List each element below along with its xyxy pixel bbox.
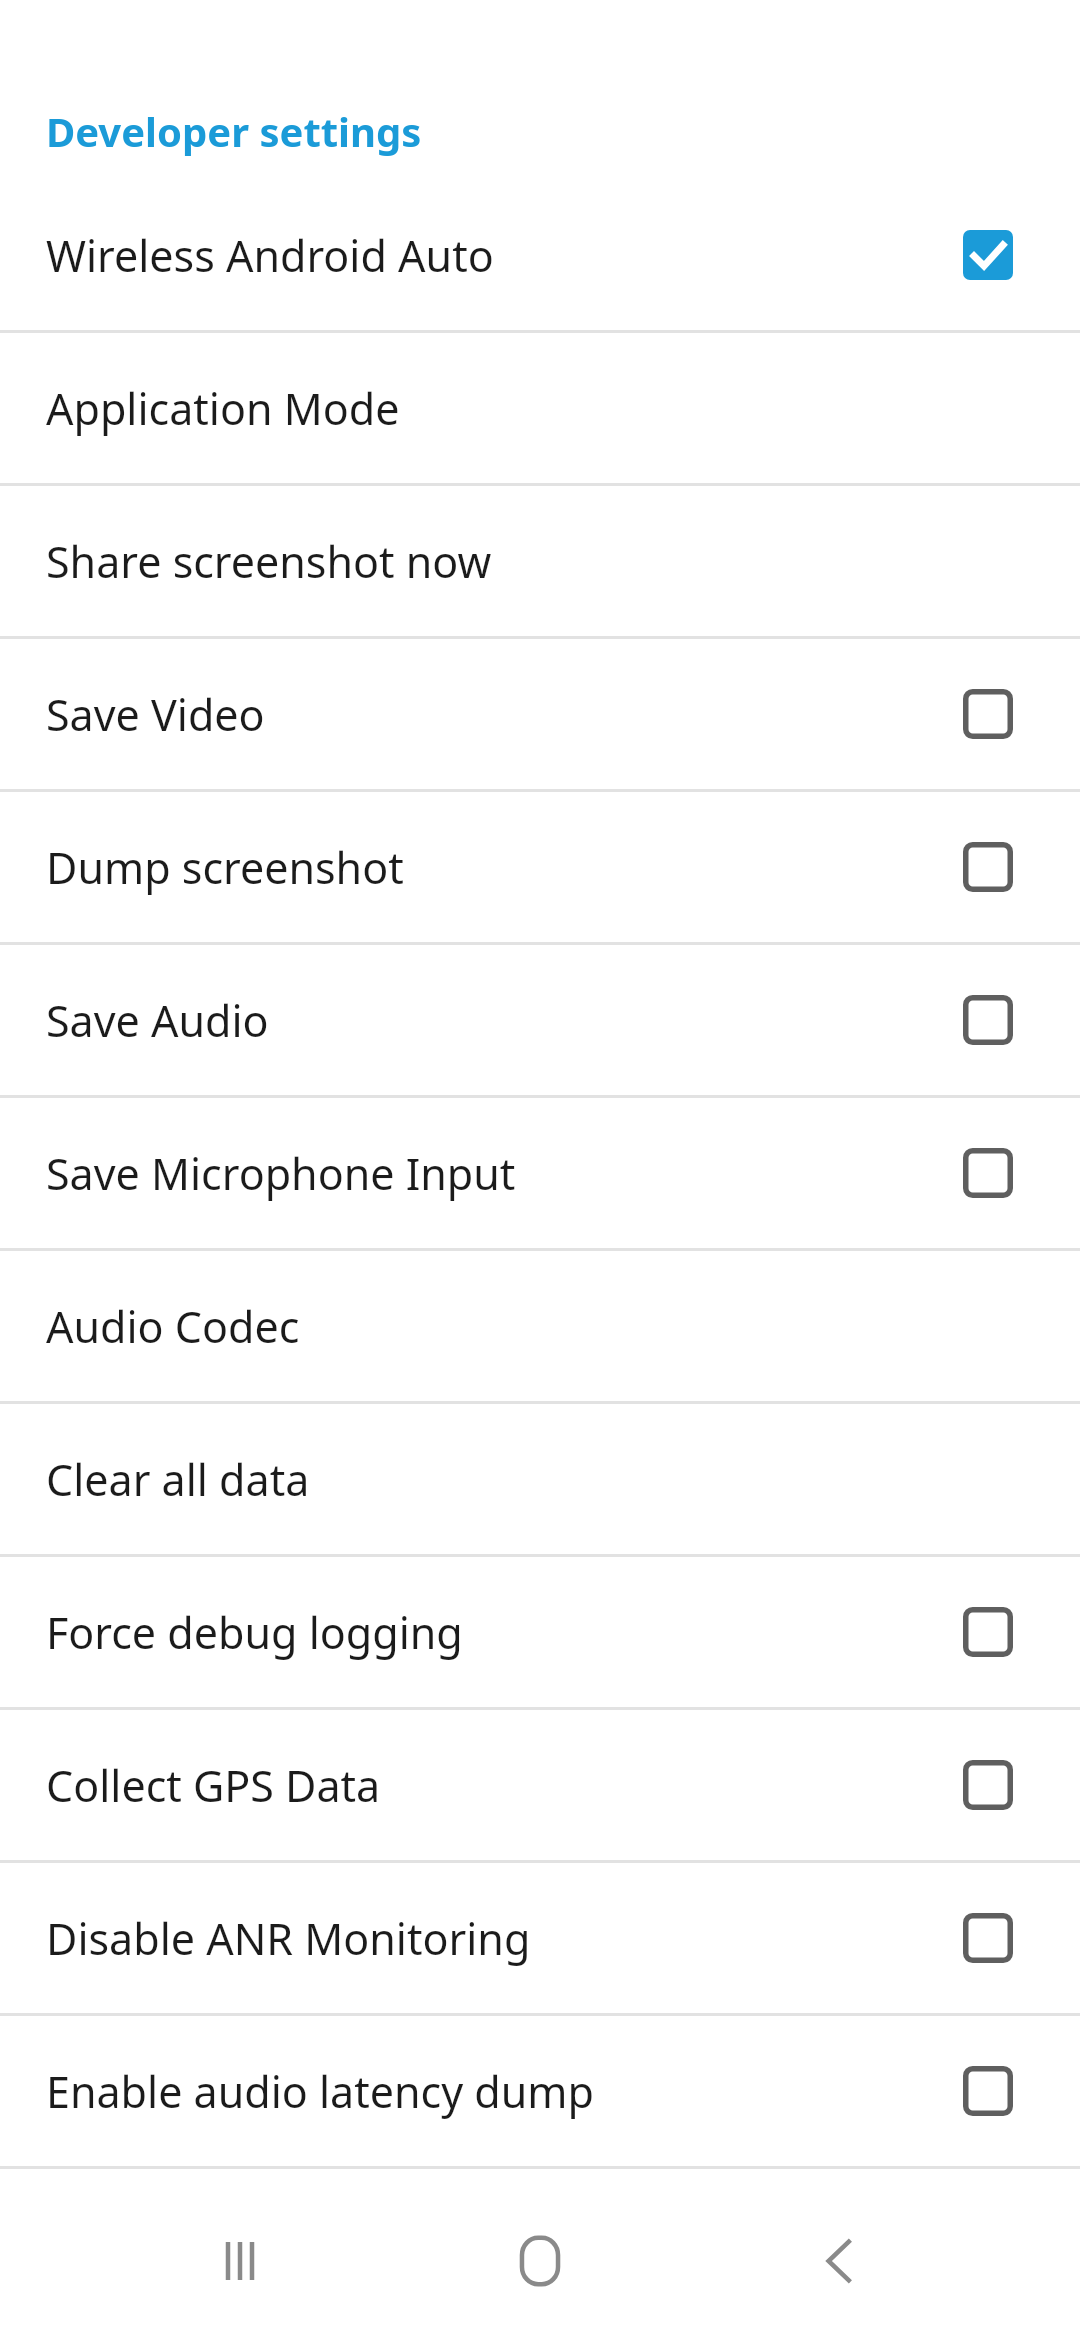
- button[interactable]: Unchecked: [963, 1607, 1013, 1657]
- button[interactable]: Application Mode: [0, 333, 1080, 483]
- button[interactable]: Unchecked: [963, 1148, 1013, 1198]
- button[interactable]: Recents: [180, 2201, 300, 2321]
- button[interactable]: Clear all data: [0, 1404, 1080, 1554]
- staticText: Audio Codec: [46, 1297, 1013, 1356]
- button[interactable]: Disable ANR Monitoring: [0, 1863, 1080, 2013]
- staticText: Save Microphone Input: [46, 1144, 963, 1203]
- button[interactable]: Unchecked: [963, 1760, 1013, 1810]
- button[interactable]: Save Microphone Input: [0, 1098, 1080, 1248]
- staticText: Application Mode: [46, 379, 1013, 438]
- staticText: Share screenshot now: [46, 532, 1013, 591]
- staticText: Developer settings: [46, 104, 422, 158]
- button[interactable]: Wireless Android Auto: [0, 180, 1080, 330]
- button[interactable]: Unchecked: [963, 842, 1013, 892]
- button[interactable]: Save Audio: [0, 945, 1080, 1095]
- button[interactable]: Unchecked: [963, 689, 1013, 739]
- staticText: Enable audio latency dump: [46, 2062, 963, 2121]
- button[interactable]: Checked: [963, 230, 1013, 280]
- staticText: Save Audio: [46, 991, 963, 1050]
- button[interactable]: Force debug logging: [0, 1557, 1080, 1707]
- staticText: Wireless Android Auto: [46, 226, 963, 285]
- staticText: Save Video: [46, 685, 963, 744]
- button[interactable]: Audio Codec: [0, 1251, 1080, 1401]
- button[interactable]: Unchecked: [963, 2066, 1013, 2116]
- button[interactable]: Enable audio latency dump: [0, 2016, 1080, 2166]
- staticText: Clear all data: [46, 1450, 1013, 1509]
- button[interactable]: Unchecked: [963, 1913, 1013, 1963]
- staticText: Disable ANR Monitoring: [46, 1909, 963, 1968]
- button[interactable]: Collect GPS Data: [0, 1710, 1080, 1860]
- button[interactable]: Save Video: [0, 639, 1080, 789]
- button[interactable]: Back: [780, 2201, 900, 2321]
- button[interactable]: Dump screenshot: [0, 792, 1080, 942]
- staticText: Collect GPS Data: [46, 1756, 963, 1815]
- staticText: Force debug logging: [46, 1603, 963, 1662]
- button[interactable]: Unchecked: [963, 995, 1013, 1045]
- button[interactable]: Home: [480, 2201, 600, 2321]
- staticText: Dump screenshot: [46, 838, 963, 897]
- button[interactable]: Share screenshot now: [0, 486, 1080, 636]
